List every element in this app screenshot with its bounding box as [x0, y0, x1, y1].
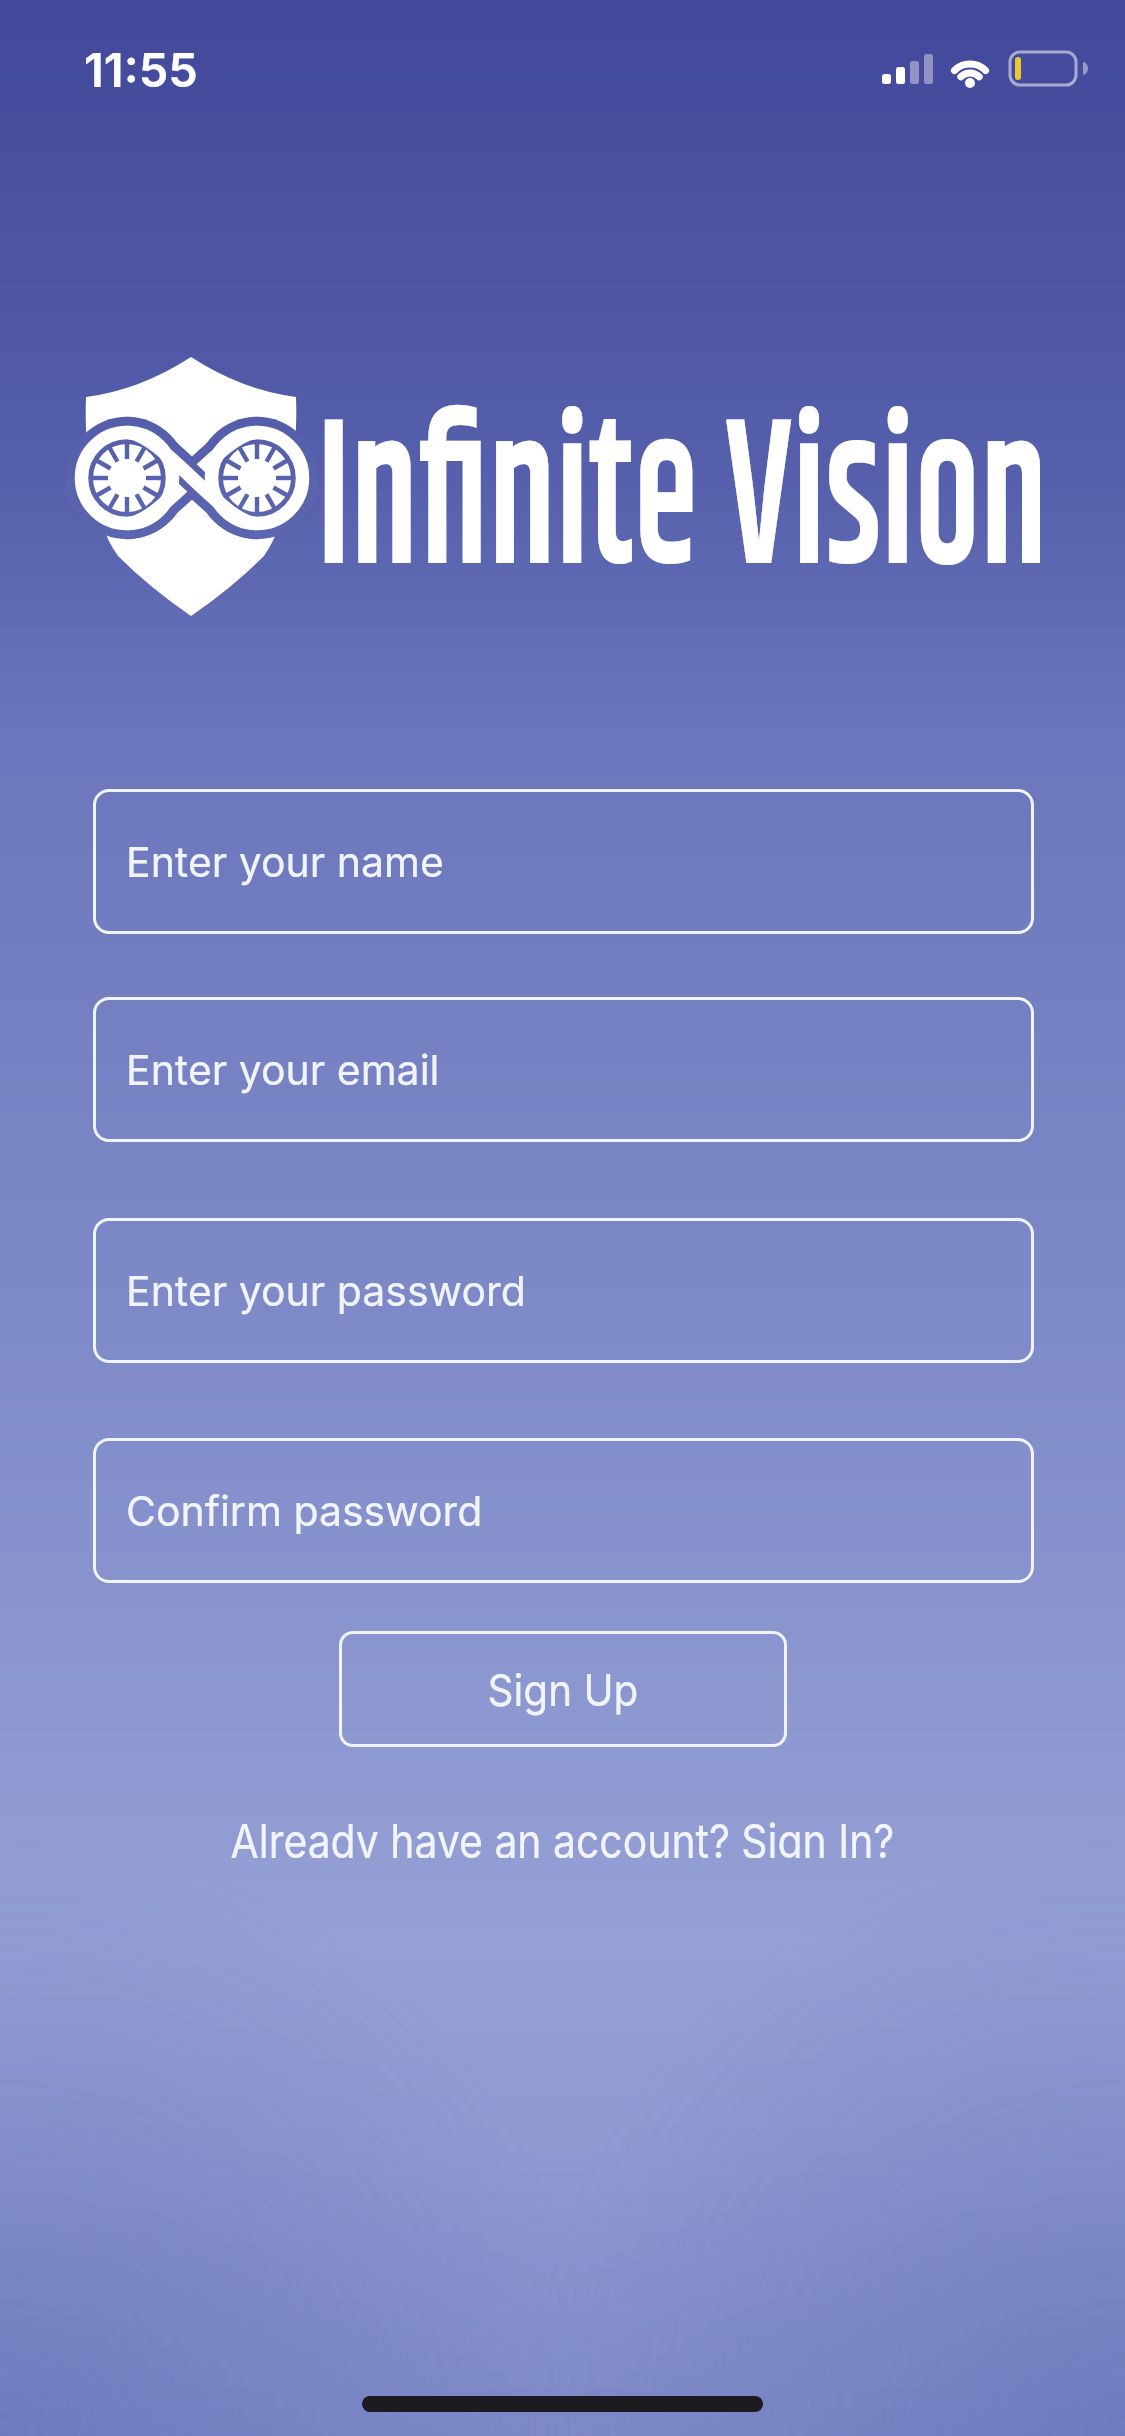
- staticText: Sign Up: [488, 1663, 638, 1716]
- staticText: 11:55: [84, 41, 198, 98]
- staticText: Enter your name: [126, 837, 444, 887]
- button[interactable]: Enter your email: [93, 997, 1034, 1142]
- button[interactable]: Enter your name: [93, 789, 1034, 934]
- button[interactable]: Sign Up: [339, 1631, 787, 1747]
- button[interactable]: Enter your password: [93, 1218, 1034, 1363]
- staticText: Enter your email: [126, 1045, 440, 1095]
- staticText: Confirm password: [126, 1486, 483, 1536]
- button[interactable]: Already have an account? Sign In?: [0, 1812, 1125, 1858]
- staticText: Enter your password: [126, 1266, 526, 1316]
- button[interactable]: Confirm password: [93, 1438, 1034, 1583]
- staticText: Already have an account? Sign In?: [231, 1812, 894, 1858]
- staticText: Infinite Vision: [317, 344, 1047, 664]
